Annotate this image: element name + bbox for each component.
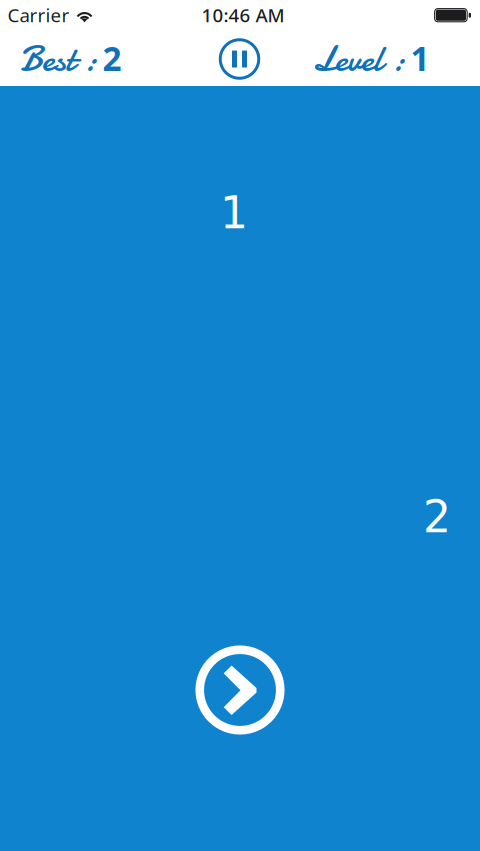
button[interactable]: Next level bbox=[190, 640, 290, 740]
staticText: Carrier bbox=[7, 3, 69, 27]
button[interactable]: Pause bbox=[212, 34, 266, 84]
button[interactable]: Level : bbox=[312, 35, 429, 84]
staticText: 1 bbox=[220, 187, 248, 239]
staticText: Level : bbox=[312, 35, 404, 84]
staticText: 1 bbox=[410, 36, 429, 80]
staticText: 10:46 AM bbox=[201, 3, 284, 27]
staticText: 2 bbox=[423, 491, 451, 543]
button[interactable]: Best : bbox=[19, 35, 121, 84]
staticText: 2 bbox=[102, 36, 121, 80]
staticText: Best : bbox=[19, 35, 96, 84]
